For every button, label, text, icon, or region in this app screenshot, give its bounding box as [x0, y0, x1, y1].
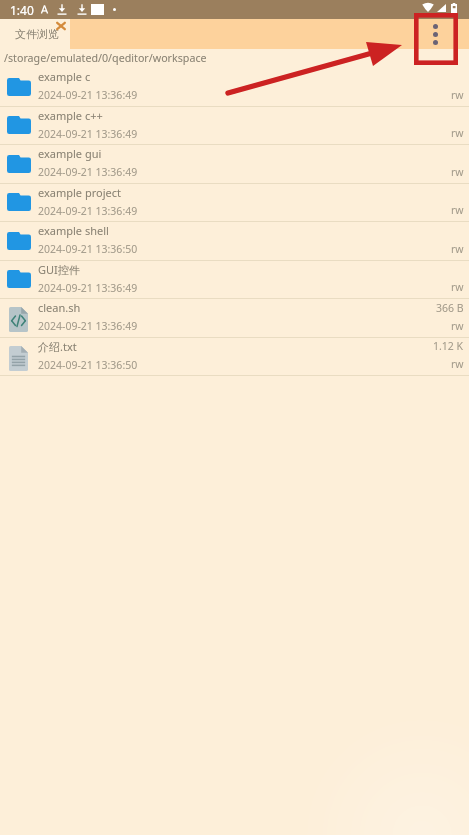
staticText: 1:40 — [10, 2, 34, 18]
staticText: 2024-09-21 13:36:49 — [38, 319, 138, 333]
button[interactable]: 文件浏览 — [0, 19, 70, 49]
staticText: rw — [451, 203, 464, 217]
staticText: rw — [451, 319, 464, 333]
staticText: rw — [451, 357, 464, 371]
staticText: 2024-09-21 13:36:49 — [38, 281, 138, 295]
staticText: 2024-09-21 13:36:49 — [38, 204, 138, 218]
staticText: /storage/emulated/0/qeditor/workspace — [4, 51, 207, 66]
staticText: example c++ — [38, 108, 103, 123]
staticText: 366 B — [436, 301, 464, 315]
button[interactable]: example gui — [0, 145, 469, 184]
staticText: example c — [38, 69, 91, 84]
button[interactable]: More options — [417, 19, 454, 49]
button[interactable]: GUI控件 — [0, 261, 469, 299]
button[interactable]: example shell — [0, 222, 469, 261]
staticText: example shell — [38, 223, 109, 238]
staticText: 2024-09-21 13:36:49 — [38, 127, 138, 141]
staticText: 介绍.txt — [38, 339, 77, 354]
staticText: 文件浏览 — [15, 27, 59, 41]
staticText: example project — [38, 185, 121, 200]
button[interactable]: clean.sh — [0, 299, 469, 338]
staticText: example gui — [38, 146, 102, 161]
staticText: rw — [451, 165, 464, 179]
staticText: 2024-09-21 13:36:49 — [38, 165, 138, 179]
button[interactable]: Close tab — [56, 22, 66, 30]
button[interactable]: example project — [0, 184, 469, 222]
staticText: 2024-09-21 13:36:50 — [38, 358, 138, 372]
staticText: GUI控件 — [38, 262, 80, 277]
button[interactable]: example c — [0, 68, 469, 107]
staticText: 1.12 K — [433, 339, 464, 353]
button[interactable]: example c++ — [0, 107, 469, 145]
staticText: rw — [451, 242, 464, 256]
staticText: rw — [451, 126, 464, 140]
staticText: 2024-09-21 13:36:50 — [38, 242, 138, 256]
staticText: rw — [451, 280, 464, 294]
staticText: clean.sh — [38, 300, 81, 315]
staticText: rw — [451, 88, 464, 102]
button[interactable]: 介绍.txt — [0, 338, 469, 376]
staticText: 2024-09-21 13:36:49 — [38, 88, 138, 102]
